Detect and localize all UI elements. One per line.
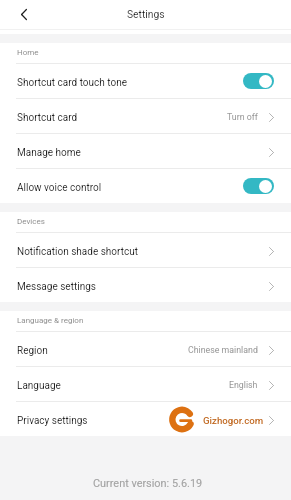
staticText: Manage home <box>17 147 81 159</box>
staticText: Language <box>17 380 61 392</box>
staticText: Allow voice control <box>17 182 102 194</box>
staticText: Gizhogor.com <box>203 415 264 426</box>
button[interactable]: Privacy settings <box>0 402 291 436</box>
button[interactable]: Allow voice control <box>0 169 291 203</box>
staticText: Current version: 5.6.19 <box>93 477 203 490</box>
button[interactable]: Shortcut card touch tone <box>0 64 291 98</box>
staticText: Notification shade shortcut <box>17 246 138 258</box>
button[interactable]: Notification shade shortcut <box>0 233 291 267</box>
button[interactable]: Language <box>0 367 291 401</box>
staticText: Privacy settings <box>17 415 88 427</box>
staticText: English <box>229 380 258 390</box>
staticText: Chinese mainland <box>188 345 258 355</box>
staticText: Shortcut card <box>17 112 78 124</box>
staticText: Shortcut card touch tone <box>17 77 127 89</box>
staticText: Message settings <box>17 281 96 293</box>
button[interactable]: Manage home <box>0 134 291 168</box>
staticText: Turn off <box>227 112 258 122</box>
button[interactable]: Region <box>0 332 291 366</box>
button[interactable]: Message settings <box>0 268 291 302</box>
staticText: Home <box>17 48 39 57</box>
staticText: Language & region <box>17 316 84 325</box>
staticText: Settings <box>127 8 165 20</box>
button[interactable]: Back <box>0 0 47 29</box>
button[interactable]: Shortcut card <box>0 99 291 133</box>
staticText: Region <box>17 345 48 357</box>
staticText: Devices <box>17 217 45 226</box>
